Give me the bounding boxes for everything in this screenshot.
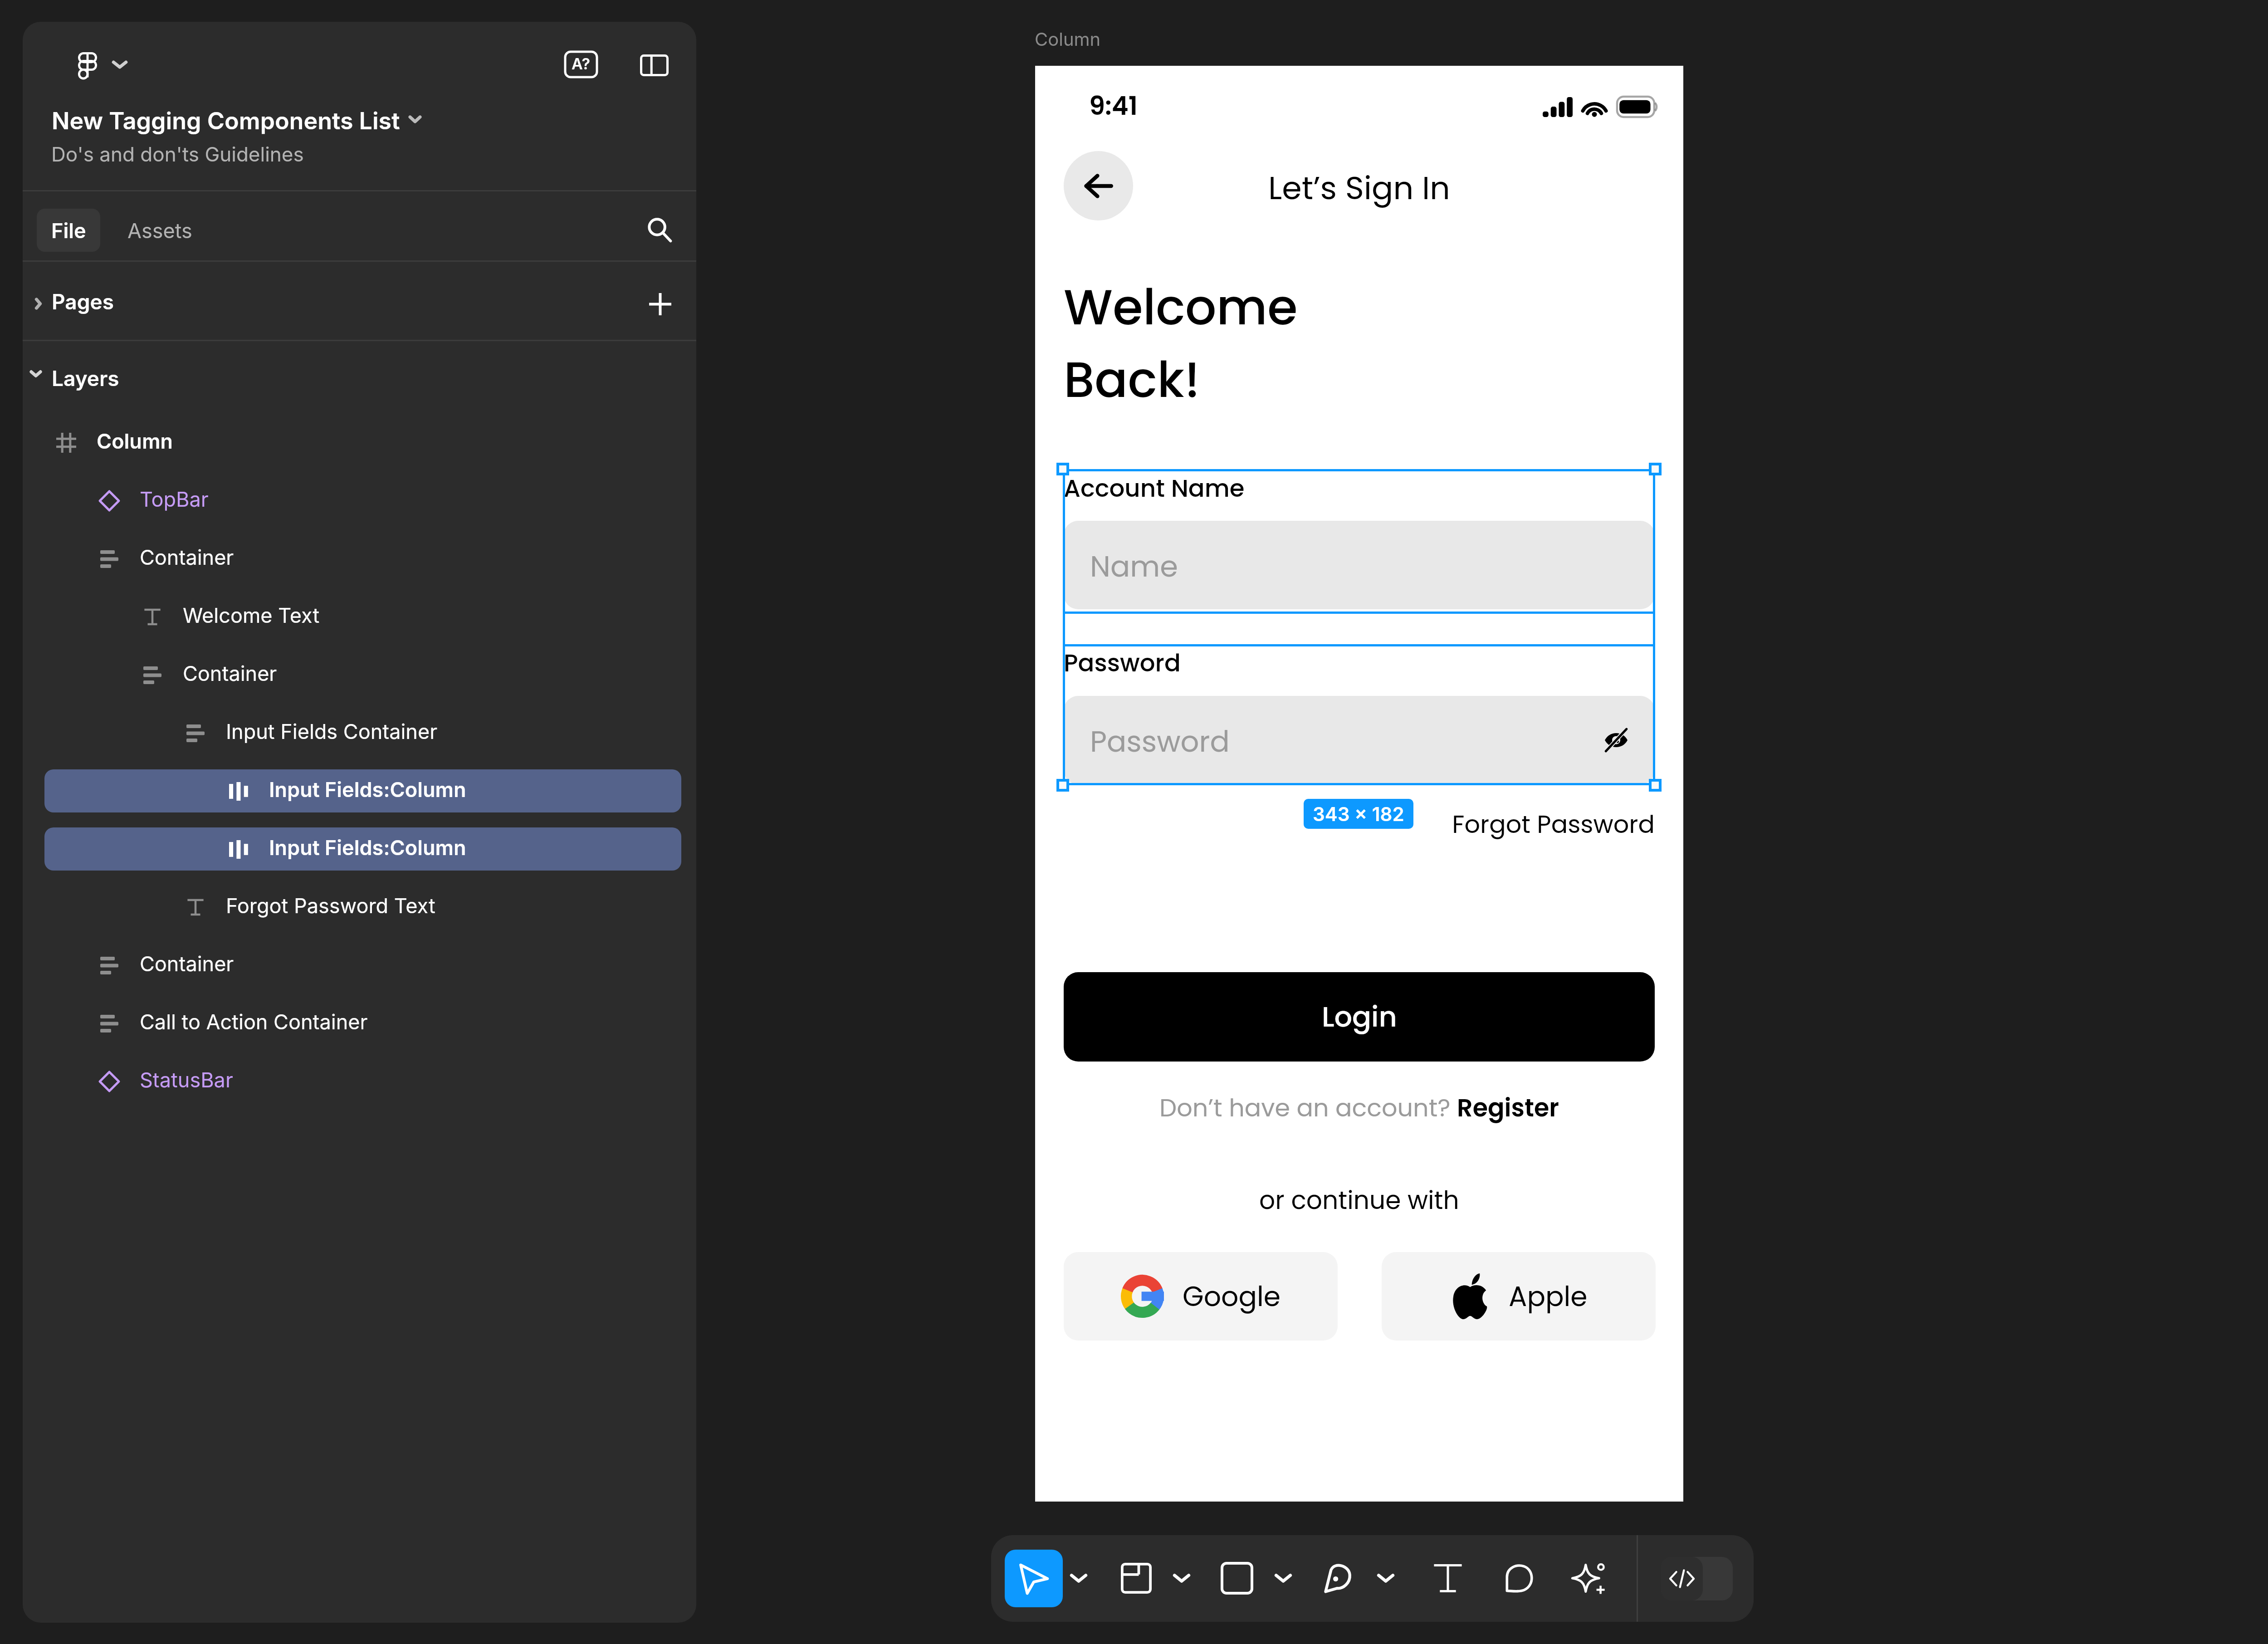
staticText: Call to Action Container xyxy=(140,1009,368,1034)
other: Show password xyxy=(1604,729,1628,751)
staticText: Forgot Password Text xyxy=(226,893,435,918)
button[interactable]: Container xyxy=(44,944,681,987)
button[interactable]: File menu xyxy=(107,52,132,77)
staticText: Container xyxy=(140,951,234,976)
staticText: Don’t have an account? Register xyxy=(1159,1091,1559,1125)
button[interactable]: Search xyxy=(635,207,684,252)
button[interactable]: Shape options xyxy=(1265,1560,1301,1596)
button[interactable]: Input Fields:Column xyxy=(44,827,681,871)
button[interactable]: Name xyxy=(1064,521,1655,609)
staticText: Input Fields:Column xyxy=(269,777,466,802)
staticText: Container xyxy=(183,661,277,685)
button[interactable]: Comment xyxy=(1495,1553,1545,1603)
button[interactable]: StatusBar xyxy=(44,1060,681,1103)
button[interactable]: Welcome Text xyxy=(44,595,681,638)
staticText: 343 × 182 xyxy=(1313,802,1404,826)
button[interactable]: Pages xyxy=(23,262,696,340)
staticText: Do's and don'ts Guidelines xyxy=(51,142,304,166)
staticText: Assets xyxy=(127,218,192,243)
button[interactable]: Pen tool xyxy=(1314,1553,1364,1603)
button[interactable]: Input Fields Container xyxy=(44,711,681,754)
button[interactable]: Actions xyxy=(1564,1553,1614,1603)
staticText: StatusBar xyxy=(140,1067,233,1092)
button[interactable]: Input Fields:Column xyxy=(44,769,681,812)
staticText: File xyxy=(51,218,86,243)
staticText: Input Fields:Column xyxy=(269,835,466,860)
staticText: Name xyxy=(1090,546,1178,587)
button[interactable]: Move tool options xyxy=(1061,1560,1097,1596)
staticText: Password xyxy=(1064,646,1181,680)
staticText: Layers xyxy=(52,366,119,391)
staticText: Account Name xyxy=(1064,471,1245,505)
button[interactable]: Layers xyxy=(23,341,696,398)
staticText: Apple xyxy=(1509,1277,1588,1316)
staticText: Pages xyxy=(52,289,114,314)
button[interactable]: Container xyxy=(44,653,681,696)
button[interactable]: Frame tool xyxy=(1111,1553,1161,1603)
button[interactable]: Don’t have an account? Register xyxy=(1035,1087,1683,1128)
button[interactable]: Call to Action Container xyxy=(44,1002,681,1045)
button[interactable]: Container xyxy=(44,537,681,580)
button[interactable]: Google xyxy=(1064,1252,1338,1341)
staticText: Google xyxy=(1183,1277,1281,1316)
staticText: Input Fields Container xyxy=(226,719,438,744)
staticText: A? xyxy=(572,54,591,73)
button[interactable]: File xyxy=(37,209,100,252)
staticText: Password xyxy=(1090,721,1230,762)
button[interactable]: Add page xyxy=(635,284,684,324)
button[interactable]: Back xyxy=(1064,151,1133,220)
staticText: or continue with xyxy=(1259,1183,1459,1218)
button[interactable]: Column xyxy=(44,421,681,464)
button[interactable]: Password xyxy=(1064,696,1655,784)
button[interactable]: Frame options xyxy=(1163,1560,1200,1596)
staticText: Welcome Text xyxy=(183,603,320,627)
button[interactable]: Forgot Password Text xyxy=(44,886,681,929)
button[interactable]: Rectangle tool xyxy=(1212,1553,1262,1603)
button[interactable]: Move tool xyxy=(1005,1550,1063,1607)
button[interactable]: Assets xyxy=(119,209,200,252)
button[interactable]: TopBar xyxy=(44,479,681,522)
button[interactable]: Text tool xyxy=(1423,1553,1473,1603)
button[interactable]: File options xyxy=(402,106,428,132)
button[interactable]: Figma menu xyxy=(71,44,104,86)
staticText: Container xyxy=(140,545,234,569)
staticText: Let’s Sign In xyxy=(1035,166,1683,210)
button[interactable]: Toggle UI xyxy=(633,44,675,86)
button[interactable]: Apple xyxy=(1382,1252,1656,1341)
staticText: Column xyxy=(97,429,173,453)
button[interactable]: Annotations xyxy=(559,44,603,85)
staticText: 9:41 xyxy=(1089,88,1138,123)
button[interactable]: Dev mode xyxy=(1661,1557,1703,1600)
staticText: Welcome Back! xyxy=(1064,273,1298,414)
button[interactable]: Login xyxy=(1064,972,1655,1062)
staticText: TopBar xyxy=(140,487,209,511)
staticText: Login xyxy=(1322,997,1397,1037)
staticText: Column xyxy=(1035,28,1101,50)
button[interactable]: Forgot Password xyxy=(1354,807,1655,842)
button[interactable]: Pen options xyxy=(1368,1560,1404,1596)
staticText: New Tagging Components List xyxy=(52,107,400,135)
